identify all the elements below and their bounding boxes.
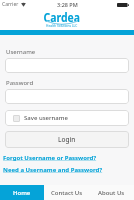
- staticText: Cardea: [44, 8, 80, 24]
- button[interactable]: Need a Username and Password?: [3, 166, 103, 174]
- staticText: Username: [6, 48, 36, 56]
- staticText: Password: [6, 79, 34, 87]
- button[interactable]: Forgot Username or Password?: [3, 154, 97, 162]
- button[interactable]: Home: [0, 185, 44, 200]
- staticText: Health Solutions LLC: [46, 24, 78, 28]
- button[interactable]: Username input: [5, 58, 129, 73]
- staticText: Carrier: [2, 1, 19, 8]
- staticText: Login: [58, 135, 76, 144]
- button[interactable]: Password input: [5, 89, 129, 104]
- staticText: Save username: [24, 114, 68, 122]
- staticText: About Us: [98, 189, 125, 197]
- button[interactable]: Contact Us: [44, 185, 89, 200]
- staticText: Forgot Username or Password?: [3, 154, 97, 162]
- button[interactable]: Login: [5, 131, 129, 148]
- button[interactable]: Save username: [5, 110, 129, 126]
- staticText: Home: [13, 189, 31, 197]
- staticText: Need a Username and Password?: [3, 166, 103, 174]
- staticText: 3:28 PM: [57, 1, 78, 8]
- staticText: Contact Us: [51, 189, 83, 197]
- button[interactable]: About Us: [89, 185, 134, 200]
